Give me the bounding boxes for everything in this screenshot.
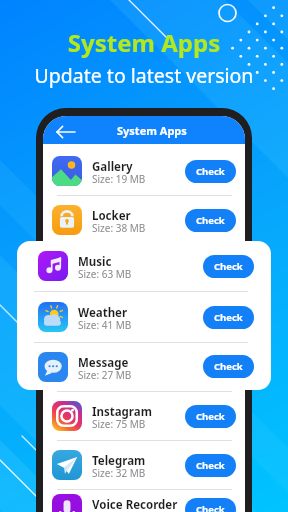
staticText: Check — [196, 312, 225, 325]
staticText: Instagram — [92, 404, 152, 420]
button[interactable]: Weather — [52, 294, 236, 342]
button[interactable]: Check — [203, 255, 254, 278]
staticText: Size: 27 MB — [92, 368, 146, 382]
staticText: Size: 63 MB — [78, 267, 132, 281]
button[interactable]: Check — [185, 405, 236, 428]
staticText: Size: 32 MB — [92, 466, 146, 480]
button[interactable]: Check — [185, 454, 236, 477]
button[interactable]: Message — [38, 343, 254, 390]
staticText: Voice Recorder — [92, 497, 178, 512]
button[interactable]: Check — [203, 355, 254, 378]
button[interactable]: Check — [185, 209, 236, 232]
button[interactable]: Check — [185, 160, 236, 183]
staticText: Check — [196, 165, 225, 178]
staticText: Size: 27 MB — [78, 368, 132, 382]
staticText: Check — [196, 503, 225, 512]
staticText: Check — [214, 311, 243, 324]
button[interactable]: Check — [185, 356, 236, 379]
staticText: Size: 38 MB — [92, 221, 146, 235]
staticText: Check — [214, 360, 243, 373]
staticText: Check — [196, 361, 225, 374]
button[interactable]: Check — [203, 306, 254, 329]
button[interactable]: Locker — [52, 196, 236, 244]
staticText: Check — [196, 410, 225, 423]
staticText: Telegram — [92, 453, 146, 469]
staticText: Check — [214, 260, 243, 273]
button[interactable]: Back — [57, 123, 75, 141]
button[interactable]: Instagram — [52, 392, 236, 440]
staticText: Size: 41 MB — [92, 319, 146, 333]
staticText: System Apps — [117, 123, 187, 138]
staticText: Check — [196, 263, 225, 276]
staticText: Message — [92, 355, 143, 371]
staticText: Weather — [92, 306, 142, 322]
staticText: Size: 19 MB — [92, 172, 146, 186]
staticText: Music — [78, 254, 112, 270]
button[interactable]: Voice Recorder — [52, 490, 236, 512]
button[interactable]: Music — [52, 245, 236, 293]
button[interactable]: Message — [52, 343, 236, 391]
button[interactable]: Weather — [38, 292, 254, 342]
staticText: Size: 63 MB — [92, 270, 146, 284]
button[interactable]: Check — [185, 258, 236, 281]
staticText: Message — [78, 355, 129, 371]
staticText: Size: 75 MB — [92, 417, 146, 431]
staticText: Check — [196, 214, 225, 227]
staticText: Check — [196, 459, 225, 472]
staticText: Update to latest version — [0, 62, 288, 89]
staticText: Locker — [92, 208, 131, 224]
button[interactable]: Check — [185, 498, 236, 512]
staticText: Weather — [78, 305, 128, 321]
staticText: System Apps — [0, 26, 288, 59]
staticText: Size: 41 MB — [78, 318, 132, 332]
button[interactable]: Music — [38, 241, 254, 291]
button[interactable]: Telegram — [52, 441, 236, 489]
button[interactable]: Check — [185, 307, 236, 330]
staticText: Gallery — [92, 159, 133, 175]
button[interactable]: Gallery — [52, 147, 236, 195]
staticText: Music — [92, 257, 126, 273]
